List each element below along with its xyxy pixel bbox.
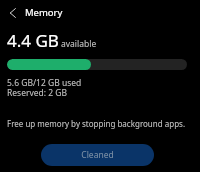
staticText: 5.6 GB/12 GB used	[7, 77, 82, 89]
staticText: 4.4 GB	[7, 29, 59, 52]
button[interactable]: Cleaned	[41, 144, 154, 166]
staticText: Free up memory by stopping background ap…	[7, 118, 186, 129]
button[interactable]: Back	[0, 0, 25, 25]
staticText: available	[61, 38, 97, 50]
staticText: Memory	[25, 6, 63, 19]
staticText: Cleaned	[81, 149, 114, 161]
staticText: Reserved: 2 GB	[7, 87, 68, 99]
